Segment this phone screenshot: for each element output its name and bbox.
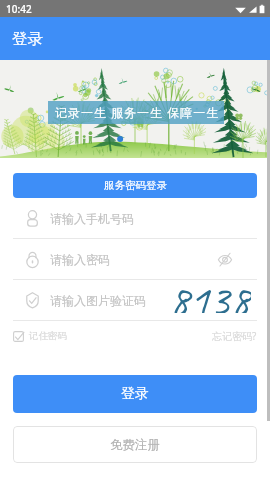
button[interactable]: 请输入手机号码 — [13, 198, 257, 238]
button[interactable]: 记住密码 — [13, 330, 67, 342]
button[interactable]: Show password — [212, 246, 238, 272]
staticText: 服务密码登录 — [104, 179, 167, 192]
button[interactable]: 服务密码登录 — [13, 173, 257, 198]
staticText: 记录一生 服务一生 保障一生 — [55, 104, 220, 120]
button[interactable]: Refresh captcha — [169, 280, 257, 320]
button[interactable]: 免费注册 — [13, 426, 257, 463]
staticText: 请输入密码 — [50, 252, 110, 267]
staticText: 记住密码 — [29, 330, 67, 342]
staticText: 登录 — [121, 385, 149, 403]
staticText: 请输入图片验证码 — [50, 293, 146, 308]
staticText: 10:42 — [6, 2, 32, 16]
button[interactable]: 请输入密码 — [13, 239, 257, 279]
staticText: 免费注册 — [110, 437, 160, 453]
button[interactable]: 登录 — [13, 375, 257, 413]
staticText: 登录 — [12, 29, 43, 49]
staticText: 8138 — [169, 273, 251, 313]
staticText: 请输入手机号码 — [50, 211, 134, 226]
staticText: 忘记密码? — [212, 329, 257, 343]
button[interactable]: 忘记密码? — [212, 329, 257, 343]
button[interactable]: 请输入图片验证码 — [13, 280, 257, 320]
